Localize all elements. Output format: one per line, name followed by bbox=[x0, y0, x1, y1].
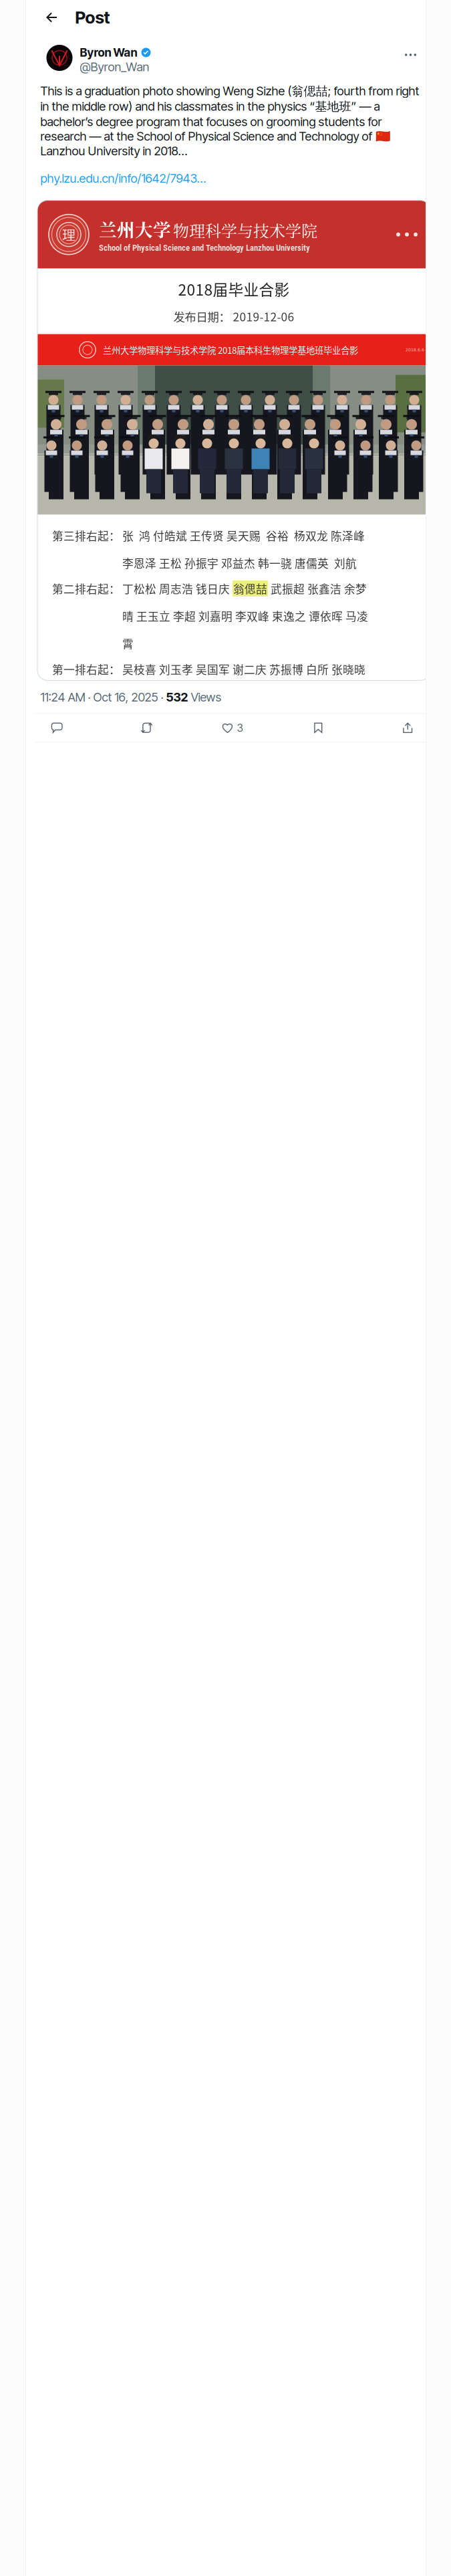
staticText: 吴枝喜 刘玉孝 吴国军 谢二庆 苏振博 白所 张晓晓 bbox=[122, 661, 365, 677]
staticText: 第一排右起： bbox=[52, 661, 120, 677]
staticText: 532 bbox=[166, 690, 188, 704]
button[interactable]: phy.lzu.edu.cn/info/1642/7943… bbox=[40, 158, 206, 186]
staticText: 张 鸿 付皓斌 王传贤 吴天赐 谷裕 杨双龙 陈泽峰 bbox=[122, 527, 365, 543]
button[interactable]: More options bbox=[399, 45, 422, 65]
staticText: School of Physical Science and Technolog… bbox=[99, 243, 310, 253]
staticText: 理 bbox=[62, 225, 76, 244]
staticText: 丁松松 周志浩 钱日庆 bbox=[122, 580, 233, 597]
staticText: 3 bbox=[237, 721, 243, 734]
staticText: Views bbox=[188, 690, 221, 704]
staticText: 2018.6.6 bbox=[406, 347, 424, 352]
staticText: 第二排右起： bbox=[52, 580, 120, 597]
staticText: 兰州大学 bbox=[99, 216, 171, 242]
staticText: 翁偲喆 bbox=[233, 580, 267, 597]
staticText: 发布日期： 2019-12-06 bbox=[173, 308, 294, 325]
button[interactable]: Repost bbox=[133, 714, 161, 742]
button[interactable]: Reply bbox=[43, 714, 71, 742]
staticText: 2018届毕业合影 bbox=[178, 278, 290, 300]
button[interactable]: Share bbox=[394, 714, 422, 742]
staticText: 武振超 张鑫洁 余梦 bbox=[268, 580, 367, 597]
staticText: This is a graduation photo showing Weng … bbox=[40, 84, 419, 158]
staticText: phy.lzu.edu.cn/info/1642/7943… bbox=[40, 171, 206, 186]
staticText: 晴 王玉立 李超 刘嘉明 李双峰 束逸之 谭依晖 马凌 bbox=[122, 608, 368, 624]
staticText: 11:24 AM · Oct 16, 2025 · bbox=[40, 690, 166, 704]
staticText: 霄 bbox=[122, 635, 134, 652]
staticText: 李恩泽 王松 孙振宇 邓益杰 韩一骁 唐儒英 刘航 bbox=[122, 555, 357, 571]
button[interactable]: Like bbox=[222, 714, 243, 742]
staticText: @Byron_Wan bbox=[80, 60, 149, 74]
button[interactable]: 理 bbox=[26, 186, 442, 680]
button[interactable]: Bookmark bbox=[304, 714, 332, 742]
staticText: 第三排右起： bbox=[52, 527, 120, 543]
staticText: 物理科学与技术学院 bbox=[173, 219, 317, 242]
staticText: Post bbox=[75, 7, 110, 28]
button[interactable]: Byron Wan profile bbox=[46, 45, 72, 71]
staticText: Byron Wan bbox=[80, 45, 137, 60]
staticText: 兰州大学物理科学与技术学院 2018届本科生物理学基地班毕业合影 bbox=[103, 343, 358, 356]
button[interactable]: Back bbox=[40, 6, 63, 29]
